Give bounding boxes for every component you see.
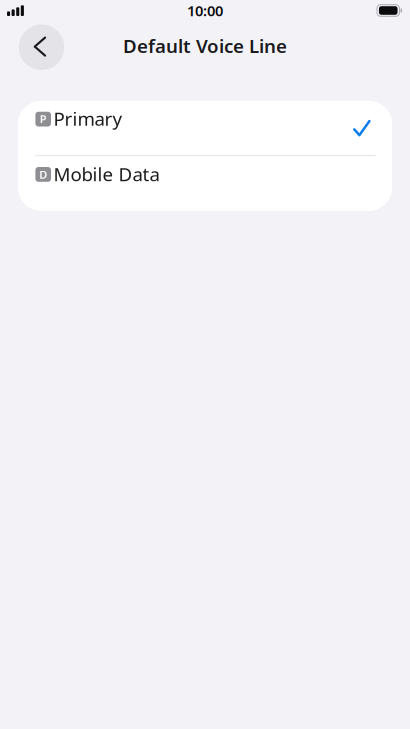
button[interactable]: D bbox=[18, 156, 392, 211]
button[interactable]: P bbox=[18, 101, 392, 155]
staticText: P bbox=[40, 112, 47, 127]
staticText: D bbox=[39, 167, 47, 182]
staticText: Default Voice Line bbox=[123, 33, 287, 58]
staticText: 10:00 bbox=[187, 0, 223, 20]
staticText: Primary bbox=[54, 106, 123, 131]
button[interactable]: Back bbox=[19, 24, 64, 70]
staticText: Mobile Data bbox=[54, 161, 160, 187]
